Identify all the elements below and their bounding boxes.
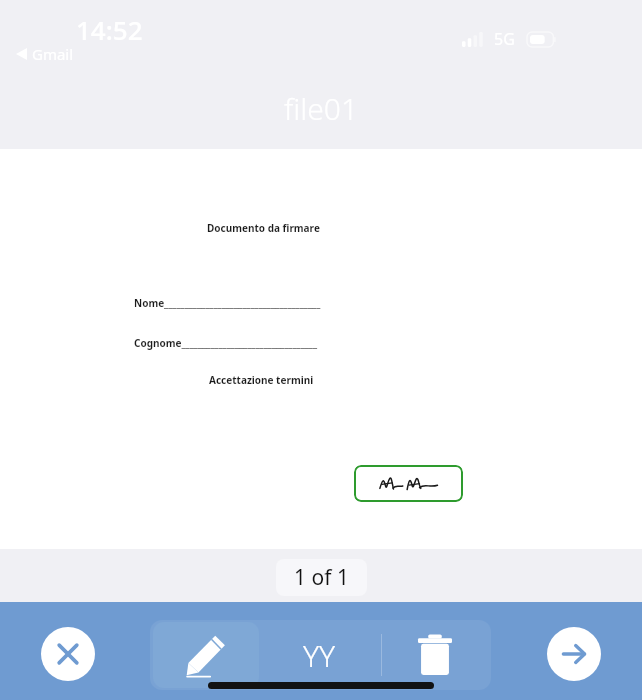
staticText: Gmail (32, 44, 74, 64)
staticText: 5G (494, 28, 515, 50)
button[interactable]: YY (259, 622, 379, 688)
button[interactable]: Signature annotation (354, 465, 463, 502)
button[interactable]: 1 of 1 (276, 559, 367, 596)
button[interactable]: Delete (382, 622, 488, 688)
staticText: Nome____________________________________… (134, 296, 321, 310)
staticText: file01 (284, 88, 359, 129)
button[interactable]: Draw (153, 622, 259, 688)
staticText: Cognome_________________________________ (134, 336, 318, 350)
staticText: YY (303, 635, 336, 676)
button[interactable]: Documento da firmare (0, 149, 642, 549)
button[interactable]: Gmail (16, 44, 74, 64)
button[interactable]: Done (547, 627, 601, 681)
staticText: Accettazione termini (209, 373, 314, 387)
button[interactable]: Cancel (41, 627, 95, 681)
staticText: Documento da firmare (207, 221, 320, 235)
staticText: 14:52 (76, 12, 143, 47)
staticText: 1 of 1 (294, 563, 349, 592)
